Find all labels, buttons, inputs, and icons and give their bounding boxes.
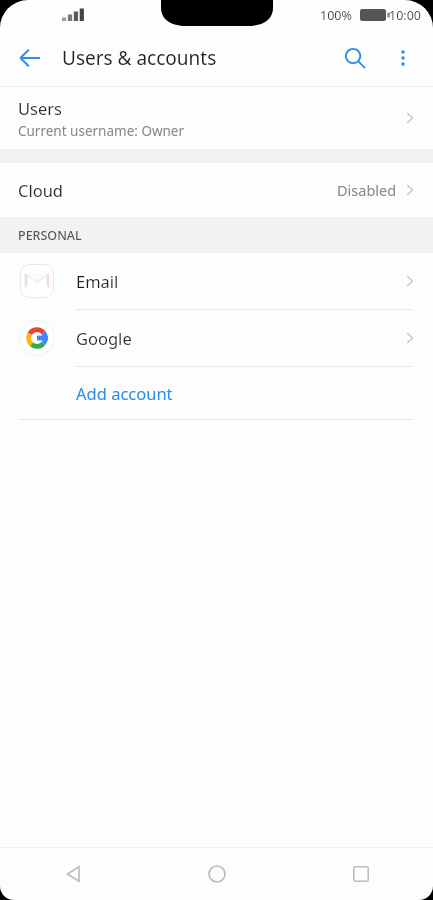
staticText: PERSONAL [18, 227, 82, 244]
button[interactable]: Add account [0, 367, 433, 419]
staticText: 100% [320, 7, 352, 24]
staticText: Add account [76, 382, 173, 404]
button[interactable]: Back [6, 34, 54, 82]
staticText: Disabled [337, 180, 397, 200]
staticText: Users [18, 97, 62, 119]
staticText: 10:00 [389, 7, 421, 24]
button[interactable]: Cloud [0, 163, 433, 217]
staticText: Current username: Owner [18, 122, 185, 140]
button[interactable]: Home [145, 848, 289, 900]
staticText: Users & accounts [62, 45, 217, 71]
staticText: Cloud [18, 179, 337, 201]
button[interactable]: More options [379, 34, 427, 82]
staticText: Google [76, 327, 401, 349]
button[interactable]: Back [0, 848, 145, 900]
staticText: Email [76, 270, 401, 292]
button[interactable]: Email [0, 253, 433, 309]
button[interactable]: Google [0, 310, 433, 366]
button[interactable]: Search [331, 34, 379, 82]
button[interactable]: Recent apps [289, 848, 433, 900]
button[interactable]: Users [0, 87, 433, 149]
